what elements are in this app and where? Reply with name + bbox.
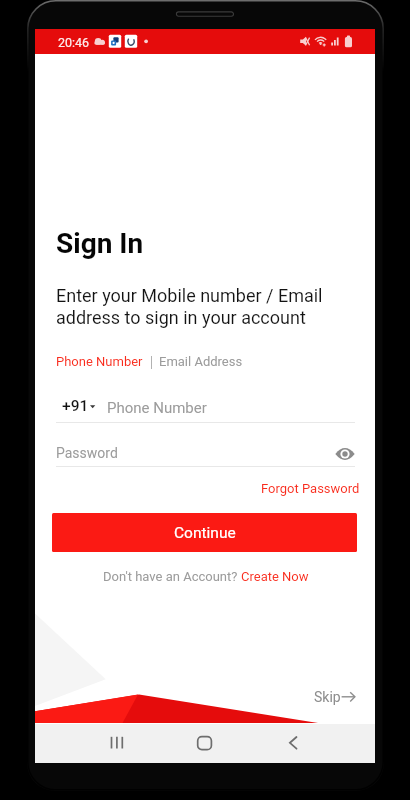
staticText: 20:46 [58,35,90,50]
button[interactable]: Show password [333,442,357,466]
button[interactable]: +91 [62,394,95,418]
button[interactable]: Forgot Password [261,481,360,496]
staticText: Don't have an Account? [103,569,241,584]
staticText: Enter your Mobile number / Email [56,285,323,306]
button[interactable]: Back [278,724,313,763]
staticText: address to sign in your account [56,307,306,328]
button[interactable]: Continue [52,513,357,552]
staticText: +91 [62,397,89,415]
button[interactable]: Create Now [241,569,309,584]
staticText: Continue [174,524,236,542]
staticText: Skip [314,689,341,705]
button[interactable]: Email Address [159,354,243,369]
staticText: Phone Number [107,399,207,417]
button[interactable]: Home [186,724,221,763]
staticText: Password [56,445,118,461]
button[interactable]: Recent apps [99,724,134,763]
button[interactable]: Phone Number [56,354,143,369]
button[interactable]: Skip [311,682,359,708]
staticText: Sign In [56,227,144,260]
